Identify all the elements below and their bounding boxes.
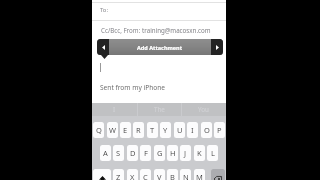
button[interactable]: J <box>180 145 191 161</box>
staticText: R <box>136 125 141 135</box>
staticText: B <box>170 172 175 180</box>
staticText: training@macosxn.com <box>142 26 211 34</box>
button[interactable]: The <box>137 103 182 116</box>
button[interactable]: L <box>207 145 218 161</box>
staticText: A <box>103 148 108 158</box>
staticText: To: <box>100 6 109 14</box>
staticText: K <box>197 148 202 158</box>
staticText: I <box>191 125 194 135</box>
button[interactable]: H <box>167 145 178 161</box>
button[interactable]: Backspace <box>211 169 225 180</box>
button[interactable]: X <box>127 169 138 180</box>
staticText: Sent from my iPhone <box>100 83 166 92</box>
button[interactable]: C <box>140 169 151 180</box>
staticText: The <box>154 105 165 113</box>
button[interactable]: Previous <box>97 39 109 55</box>
staticText: Y <box>163 125 168 135</box>
staticText: X <box>130 172 135 180</box>
button[interactable]: Y <box>160 122 171 138</box>
button[interactable]: I <box>187 122 198 138</box>
button[interactable]: Z <box>113 169 124 180</box>
staticText: L <box>211 148 215 158</box>
staticText: Add Attachment <box>137 44 183 51</box>
staticText: C <box>143 172 148 180</box>
staticText: P <box>217 125 222 135</box>
button[interactable]: A <box>100 145 111 161</box>
staticText: E <box>123 125 128 135</box>
button[interactable]: Q <box>93 122 104 138</box>
staticText: T <box>150 125 155 135</box>
staticText: O <box>204 125 210 135</box>
button[interactable]: Next <box>211 39 223 55</box>
button[interactable]: V <box>154 169 165 180</box>
staticText: N <box>183 172 189 180</box>
button[interactable]: M <box>194 169 205 180</box>
button[interactable]: Shift <box>93 169 111 180</box>
button[interactable]: E <box>120 122 131 138</box>
button[interactable]: F <box>140 145 151 161</box>
staticText: D <box>130 148 136 158</box>
button[interactable]: D <box>127 145 138 161</box>
staticText: You <box>198 105 209 113</box>
staticText: F <box>144 148 148 158</box>
button[interactable]: B <box>167 169 178 180</box>
button[interactable]: S <box>113 145 124 161</box>
button[interactable]: O <box>201 122 212 138</box>
button[interactable]: P <box>214 122 225 138</box>
staticText: Q <box>96 125 102 135</box>
button[interactable]: N <box>180 169 191 180</box>
staticText: I <box>113 105 116 113</box>
staticText: M <box>196 172 203 180</box>
staticText: U <box>177 125 183 135</box>
button[interactable]: U <box>174 122 185 138</box>
staticText: J <box>184 148 187 158</box>
button[interactable]: Add Attachment <box>109 39 211 55</box>
button[interactable]: T <box>147 122 158 138</box>
staticText: G <box>157 148 163 158</box>
button[interactable]: W <box>107 122 118 138</box>
staticText: Z <box>116 172 121 180</box>
staticText: Cc/Bcc, From: <box>101 26 142 34</box>
button[interactable]: K <box>194 145 205 161</box>
staticText: W <box>109 125 116 135</box>
staticText: H <box>170 148 176 158</box>
staticText: V <box>157 172 162 180</box>
button[interactable]: G <box>154 145 165 161</box>
staticText: S <box>116 148 121 158</box>
button[interactable]: R <box>133 122 144 138</box>
